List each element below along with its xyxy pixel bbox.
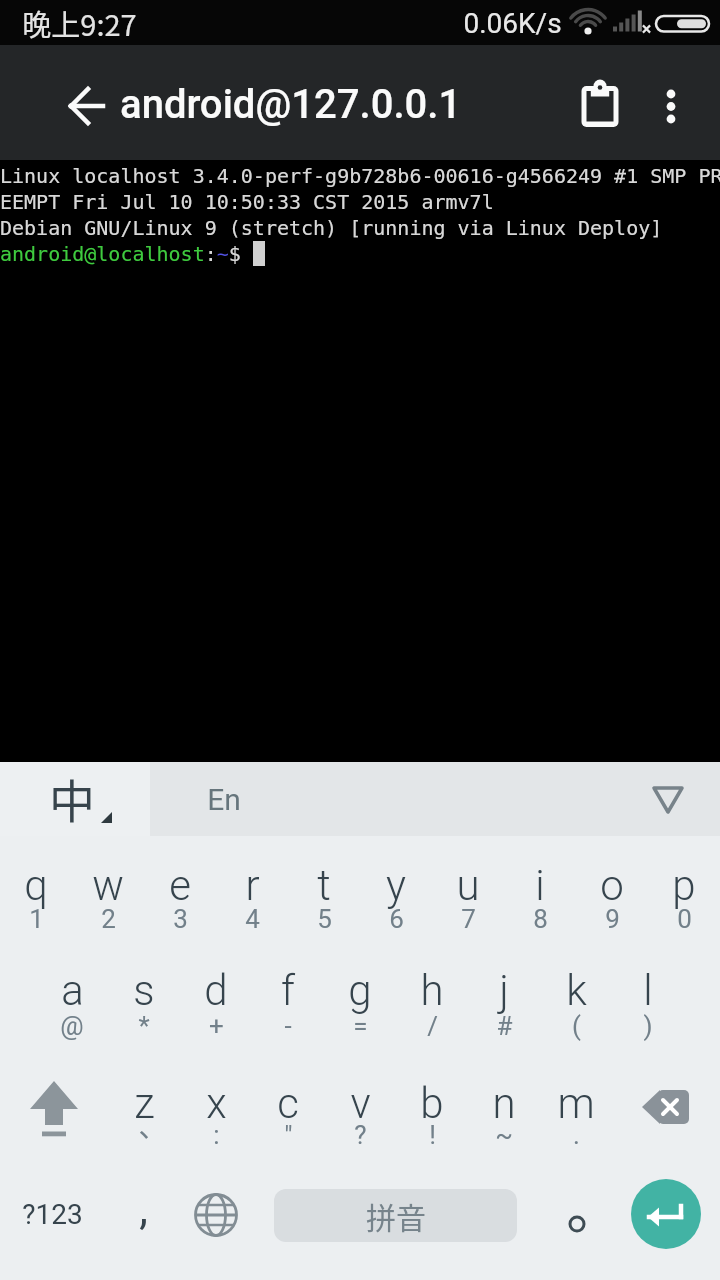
staticText: 1 <box>29 904 44 934</box>
staticText: c <box>277 1079 299 1128</box>
staticText: " <box>284 1120 293 1150</box>
button[interactable]: k <box>540 947 612 1058</box>
staticText: 0 <box>677 904 692 934</box>
button[interactable]: e <box>144 836 216 947</box>
button[interactable]: i <box>504 836 576 947</box>
staticText: p <box>672 861 696 910</box>
staticText: # <box>496 1011 513 1041</box>
staticText: ) <box>643 1011 653 1041</box>
staticText: f <box>281 966 295 1015</box>
staticText: ? <box>354 1120 367 1150</box>
staticText: 6 <box>389 904 404 934</box>
staticText: s <box>133 966 155 1015</box>
staticText: d <box>204 966 228 1015</box>
staticText: 8 <box>533 904 548 934</box>
button[interactable] <box>0 1058 108 1169</box>
staticText: En <box>207 782 241 817</box>
staticText: 4 <box>245 904 260 934</box>
button[interactable]: n <box>468 1058 540 1169</box>
staticText: 5 <box>317 904 332 934</box>
staticText: b <box>420 1079 444 1128</box>
staticText: android@localhost:~$ <box>0 242 241 265</box>
staticText: x <box>206 1079 227 1128</box>
staticText: 9 <box>605 904 620 934</box>
staticText: l <box>643 966 653 1015</box>
staticText: v <box>350 1079 371 1128</box>
staticText: m <box>557 1079 595 1128</box>
staticText: , <box>139 1183 148 1235</box>
staticText: 2 <box>101 904 116 934</box>
staticText: i <box>535 861 545 910</box>
staticText: o <box>600 861 624 910</box>
staticText: ! <box>429 1120 436 1150</box>
staticText: e <box>169 861 191 910</box>
button[interactable]: c <box>252 1058 324 1169</box>
button[interactable] <box>643 90 699 146</box>
staticText: * <box>138 1011 150 1041</box>
button[interactable] <box>55 72 123 140</box>
staticText: = <box>353 1011 368 1041</box>
button[interactable]: g <box>324 947 396 1058</box>
button[interactable] <box>540 1169 612 1280</box>
button[interactable]: j <box>468 947 540 1058</box>
button[interactable]: , <box>105 1169 180 1280</box>
staticText: 拼音 <box>366 1194 426 1237</box>
button[interactable]: ?123 <box>0 1169 105 1280</box>
button[interactable] <box>150 762 720 836</box>
staticText: j <box>499 966 509 1015</box>
staticText: EEMPT Fri Jul 10 10:50:33 CST 2015 armv7… <box>0 190 494 213</box>
staticText: q <box>24 861 48 910</box>
staticText: 晚上9:27 <box>22 2 137 44</box>
staticText: 、 <box>138 1105 167 1146</box>
staticText: 中 <box>49 765 95 832</box>
staticText: 0.06K/s <box>463 7 562 40</box>
staticText: / <box>427 1011 438 1041</box>
staticText: . <box>573 1120 580 1150</box>
staticText: : <box>213 1120 220 1150</box>
button[interactable]: m <box>540 1058 612 1169</box>
staticText: @ <box>60 1011 84 1041</box>
staticText: 7 <box>461 904 476 934</box>
button[interactable] <box>180 1169 252 1280</box>
button[interactable]: h <box>396 947 468 1058</box>
button[interactable]: w <box>72 836 144 947</box>
staticText: Debian GNU/Linux 9 (stretch) [running vi… <box>0 216 663 239</box>
button[interactable]: r <box>216 836 288 947</box>
button[interactable]: a <box>36 947 108 1058</box>
staticText: + <box>209 1011 224 1041</box>
staticText: n <box>492 1079 516 1128</box>
button[interactable]: x <box>180 1058 252 1169</box>
button[interactable]: y <box>360 836 432 947</box>
button[interactable]: d <box>180 947 252 1058</box>
staticText: 3 <box>173 904 188 934</box>
button[interactable]: p <box>648 836 720 947</box>
button[interactable]: t <box>288 836 360 947</box>
button[interactable]: 拼音 <box>274 1189 517 1242</box>
button[interactable] <box>572 72 628 128</box>
staticText: r <box>245 861 260 910</box>
staticText: ?123 <box>22 1198 83 1231</box>
staticText: - <box>284 1011 292 1041</box>
staticText: u <box>456 861 480 910</box>
staticText: Linux localhost 3.4.0-perf-g9b728b6-0061… <box>0 164 720 187</box>
button[interactable]: s <box>108 947 180 1058</box>
staticText: ( <box>572 1011 581 1041</box>
button[interactable]: l <box>612 947 684 1058</box>
button[interactable]: f <box>252 947 324 1058</box>
staticText: android@127.0.0.1 <box>120 81 462 128</box>
staticText: w <box>92 861 124 910</box>
button[interactable]: v <box>324 1058 396 1169</box>
staticText: k <box>566 966 587 1015</box>
button[interactable]: 中 <box>0 762 150 836</box>
staticText: y <box>386 861 406 910</box>
button[interactable]: b <box>396 1058 468 1169</box>
button[interactable]: z <box>108 1058 180 1169</box>
staticText: t <box>317 861 331 910</box>
button[interactable]: u <box>432 836 504 947</box>
button[interactable]: o <box>576 836 648 947</box>
button[interactable] <box>612 1169 720 1280</box>
button[interactable] <box>612 1058 720 1169</box>
button[interactable]: q <box>0 836 72 947</box>
staticText: a <box>61 966 84 1015</box>
staticText: ~ <box>495 1120 513 1150</box>
